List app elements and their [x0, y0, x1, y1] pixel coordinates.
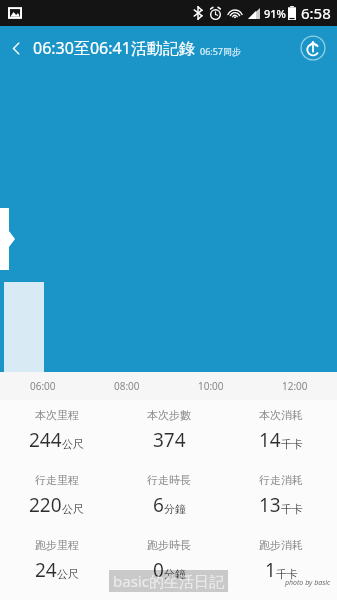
staticText: 0 [153, 557, 164, 583]
staticText: photo by basic [285, 578, 331, 588]
button[interactable]: 行走消耗 [225, 471, 337, 520]
staticText: 公尺 [57, 567, 79, 581]
button[interactable]: 本次消耗 [225, 406, 337, 455]
staticText: 91% [264, 6, 286, 21]
button[interactable]: 跑步里程 [0, 536, 113, 585]
button[interactable]: 本次步數 [113, 406, 225, 455]
staticText: 06:30至06:41活動記錄 [33, 37, 195, 59]
staticText: 14 [259, 427, 281, 453]
staticText: 06:00 [30, 379, 56, 393]
staticText: 1 [265, 557, 276, 583]
staticText: 千卡 [281, 502, 303, 516]
staticText: 本次消耗 [259, 408, 303, 422]
staticText: 374 [153, 427, 186, 453]
staticText: 244 [29, 427, 62, 453]
staticText: 08:00 [114, 379, 140, 393]
button[interactable]: 行走時長 [113, 471, 225, 520]
staticText: 本次步數 [147, 408, 191, 422]
staticText: 跑步里程 [35, 538, 79, 552]
staticText: basic的生活日記 [113, 571, 224, 591]
staticText: 6:58 [301, 3, 331, 23]
staticText: 行走時長 [147, 473, 191, 487]
staticText: 本次里程 [35, 408, 79, 422]
staticText: 12:00 [282, 379, 308, 393]
staticText: 06:57同步 [200, 45, 242, 57]
staticText: 行走消耗 [259, 473, 303, 487]
staticText: 行走里程 [35, 473, 79, 487]
staticText: 分鐘 [164, 502, 186, 516]
button[interactable]: 跑步時長 [113, 536, 225, 585]
staticText: 公尺 [62, 437, 84, 451]
button[interactable]: Back [0, 32, 32, 64]
button[interactable]: 行走里程 [0, 471, 113, 520]
staticText: 13 [259, 492, 281, 518]
staticText: 10:00 [198, 379, 224, 393]
button[interactable]: Sync [300, 35, 326, 61]
staticText: 跑步時長 [147, 538, 191, 552]
staticText: 分鐘 [164, 567, 186, 581]
staticText: 千卡 [276, 567, 298, 581]
staticText: 6 [153, 492, 164, 518]
button[interactable]: 本次里程 [0, 406, 113, 455]
staticText: 24 [35, 557, 57, 583]
staticText: 千卡 [281, 437, 303, 451]
staticText: 220 [29, 492, 62, 518]
button[interactable]: 跑步消耗 [225, 536, 337, 585]
staticText: 公尺 [62, 502, 84, 516]
staticText: 跑步消耗 [259, 538, 303, 552]
